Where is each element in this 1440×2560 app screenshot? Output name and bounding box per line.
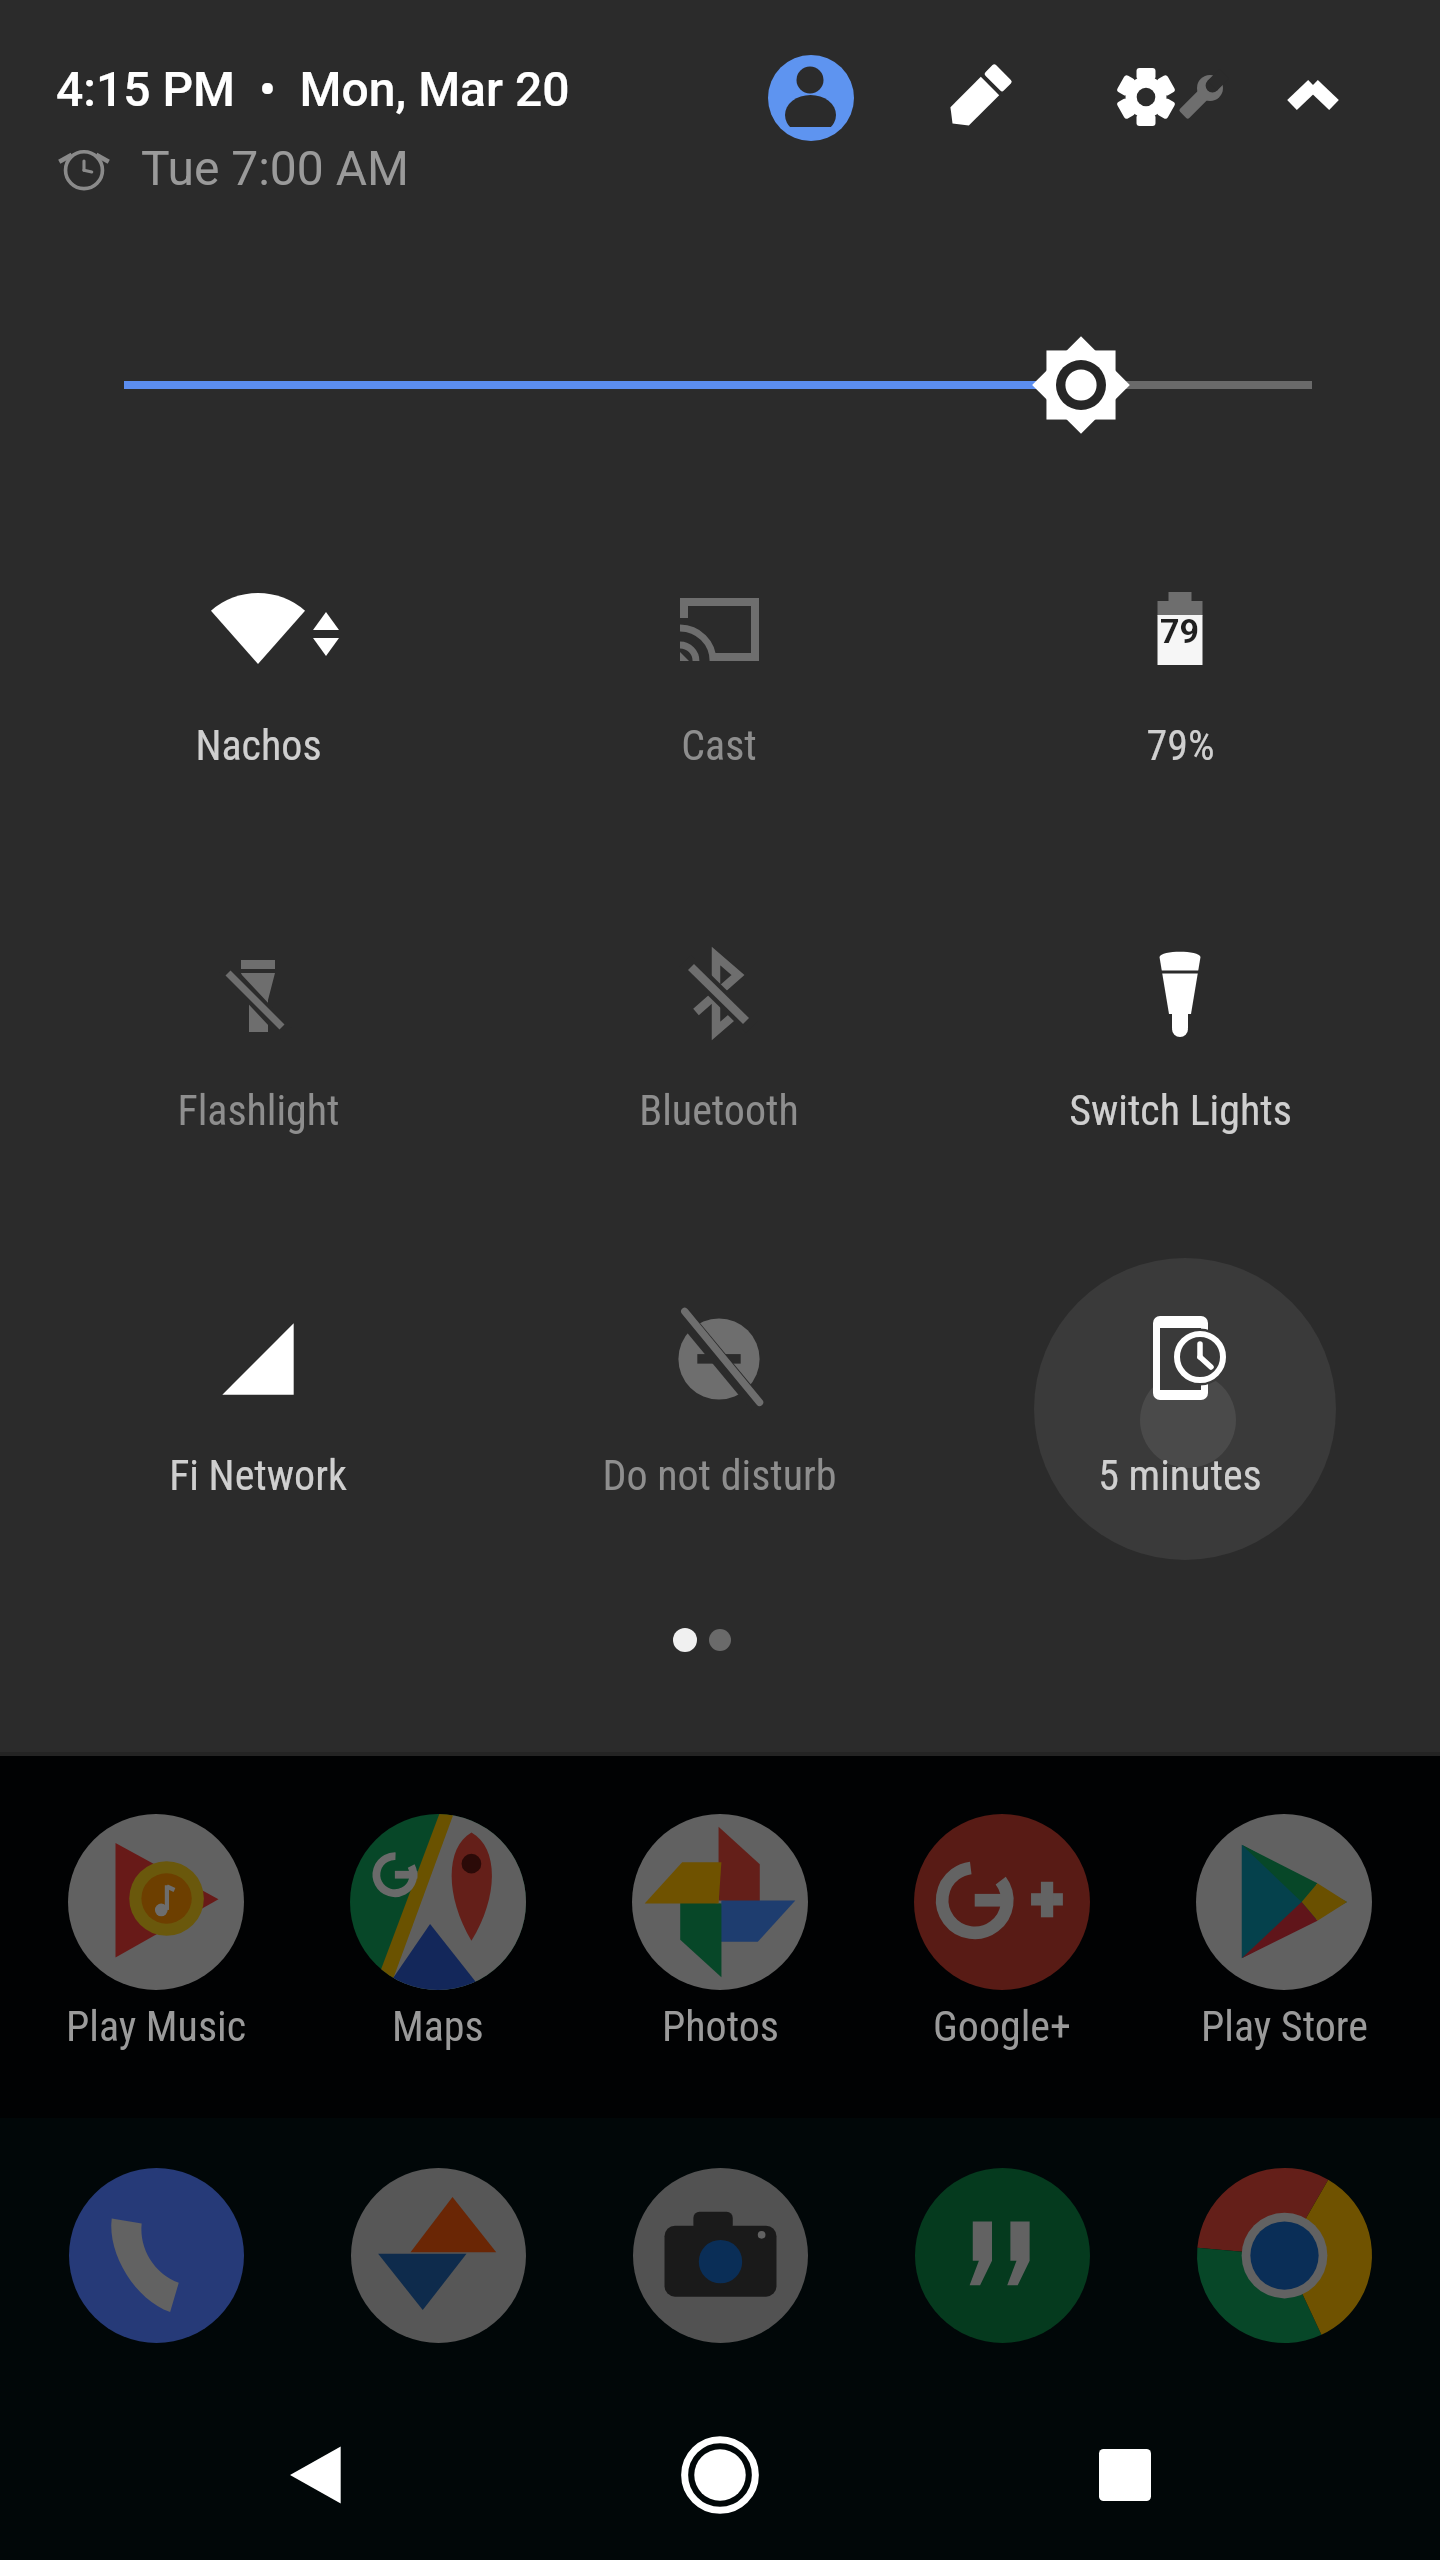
staticText: Flashlight: [177, 1086, 340, 1135]
button[interactable]: Bluetooth: [489, 899, 949, 1134]
button[interactable]: 4:15 PM • Mon, Mar 20: [46, 50, 586, 124]
staticText: Cast: [681, 721, 757, 770]
button[interactable]: Settings: [1098, 50, 1238, 150]
staticText: Tue 7:00 AM: [141, 140, 409, 196]
button[interactable]: Fi Network: [28, 1264, 488, 1499]
staticText: Nachos: [195, 721, 322, 770]
staticText: 79: [1160, 611, 1200, 647]
staticText: Play Store: [1201, 2002, 1368, 2051]
button[interactable]: Home: [655, 2410, 785, 2540]
button[interactable]: Play Music: [15, 1800, 297, 2070]
staticText: Photos: [662, 2002, 779, 2051]
staticText: 4:15 PM • Mon, Mar 20: [56, 61, 570, 117]
button[interactable]: Cast: [489, 534, 949, 769]
staticText: 79%: [1146, 721, 1215, 770]
staticText: Do not disturb: [602, 1451, 837, 1500]
button[interactable]: Phone: [69, 2168, 244, 2343]
button[interactable]: Chrome: [1197, 2168, 1372, 2343]
button[interactable]: Hangouts: [915, 2168, 1090, 2343]
button[interactable]: Page 1 of 2: [650, 1600, 790, 1680]
staticText: Play Music: [66, 2002, 247, 2051]
button[interactable]: Photos: [579, 1800, 861, 2070]
button[interactable]: Google+: [861, 1800, 1143, 2070]
button[interactable]: Maps: [297, 1800, 579, 2070]
button[interactable]: Nachos: [28, 534, 488, 769]
button[interactable]: Brightness slider: [0, 320, 1440, 450]
button[interactable]: Drive: [351, 2168, 526, 2343]
button[interactable]: 5 minutes: [950, 1264, 1410, 1499]
button[interactable]: Switch Lights: [950, 899, 1410, 1134]
button[interactable]: Edit tiles: [930, 52, 1026, 148]
button[interactable]: 79%: [950, 534, 1410, 769]
staticText: Google+: [933, 2002, 1071, 2051]
button[interactable]: Collapse panel: [1262, 50, 1364, 152]
staticText: Maps: [392, 2002, 484, 2051]
button[interactable]: User account: [768, 55, 854, 141]
button[interactable]: Do not disturb: [489, 1264, 949, 1499]
button[interactable]: Camera: [633, 2168, 808, 2343]
staticText: Fi Network: [169, 1451, 347, 1500]
button[interactable]: Play Store: [1143, 1800, 1425, 2070]
staticText: Switch Lights: [1069, 1086, 1292, 1135]
button[interactable]: Flashlight: [28, 899, 488, 1134]
button[interactable]: Recent apps: [1060, 2410, 1190, 2540]
staticText: Bluetooth: [639, 1086, 799, 1135]
button[interactable]: Tue 7:00 AM: [46, 132, 436, 200]
button[interactable]: Back: [251, 2410, 381, 2540]
staticText: 5 minutes: [1098, 1451, 1262, 1500]
